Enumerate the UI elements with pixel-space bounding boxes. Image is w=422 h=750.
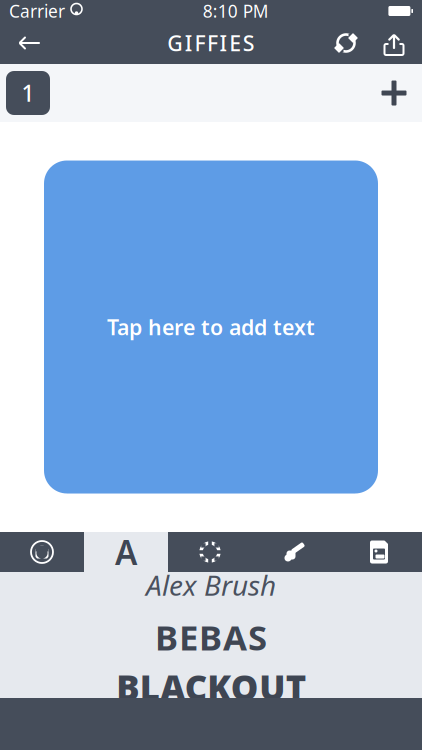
staticText: BEBAS — [155, 614, 267, 660]
button[interactable]: Photos — [336, 532, 422, 572]
staticText: A — [115, 530, 137, 574]
button[interactable]: Draw — [252, 532, 336, 572]
staticText: Alex Brush — [146, 566, 276, 604]
button[interactable]: Text — [84, 532, 168, 572]
button[interactable]: Add frame — [372, 71, 416, 115]
button[interactable]: Back — [4, 22, 56, 64]
button[interactable]: Stickers — [0, 532, 84, 572]
button[interactable]: BEBAS — [0, 612, 422, 662]
staticText: 8:10 PM — [203, 0, 269, 22]
button[interactable]: Refresh — [322, 22, 370, 64]
staticText: Tap here to add text — [107, 313, 315, 341]
staticText: GIFFIES — [167, 29, 255, 57]
button[interactable]: Share — [370, 22, 418, 64]
staticText: Carrier — [9, 0, 65, 22]
button[interactable]: BLACKOUT — [0, 662, 422, 712]
button[interactable]: 1 — [6, 71, 50, 115]
button[interactable]: Alex Brush — [0, 558, 422, 612]
staticText: BLACKOUT — [116, 664, 306, 710]
button[interactable]: Tap here to add text — [44, 160, 378, 493]
staticText: 1 — [21, 78, 34, 108]
button[interactable]: Shapes — [168, 532, 252, 572]
